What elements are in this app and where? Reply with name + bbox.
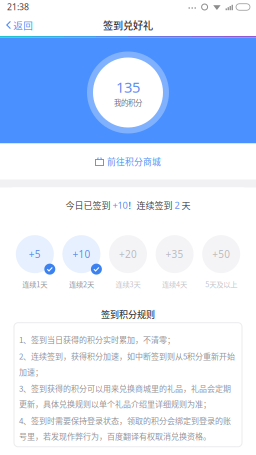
button[interactable]: +5: [11, 234, 58, 289]
staticText: +20: [119, 247, 137, 261]
staticText: 4、签到时需要保持登录状态，领取的积分会绑定到登录的账号里，若发现作弊行为，百度…: [19, 415, 231, 442]
staticText: 前往积分商城: [107, 155, 161, 168]
staticText: 连续3天: [115, 279, 140, 289]
button[interactable]: +10: [58, 234, 105, 289]
staticText: 连续2天: [69, 279, 94, 289]
staticText: +5: [29, 247, 41, 261]
staticText: 2: [174, 199, 179, 211]
button[interactable]: 返回: [0, 14, 41, 36]
staticText: 1、签到当日获得的积分实时累加，不清零；: [19, 334, 175, 345]
staticText: 连续4天: [162, 279, 187, 289]
staticText: 3、签到获得的积分可以用来兑换商城里的礼品，礼品会定期更新，具体兑换规则以单个礼…: [19, 382, 231, 410]
staticText: 签到兑好礼: [103, 18, 153, 32]
button[interactable]: +35: [151, 234, 198, 289]
staticText: 签到积分规则: [101, 307, 155, 321]
staticText: 2、连续签到，获得积分加速，如中断签到则从5积分重新开始加速；: [19, 350, 235, 377]
staticText: +10: [72, 247, 90, 261]
staticText: 5天及以上: [205, 279, 237, 289]
button[interactable]: +20: [105, 234, 151, 289]
staticText: +50: [212, 247, 230, 261]
staticText: 21:38: [7, 1, 29, 13]
staticText: 135: [116, 77, 140, 97]
staticText: +35: [166, 247, 184, 261]
button[interactable]: 前往积分商城: [85, 148, 171, 175]
staticText: 我的积分: [114, 97, 142, 108]
staticText: 天: [179, 198, 190, 212]
staticText: 返回: [13, 18, 33, 32]
staticText: ！连续签到: [127, 198, 174, 212]
staticText: +10: [112, 199, 127, 211]
staticText: 今日已签到: [65, 198, 112, 212]
button[interactable]: +50: [198, 234, 244, 289]
staticText: 连续1天: [22, 279, 47, 289]
